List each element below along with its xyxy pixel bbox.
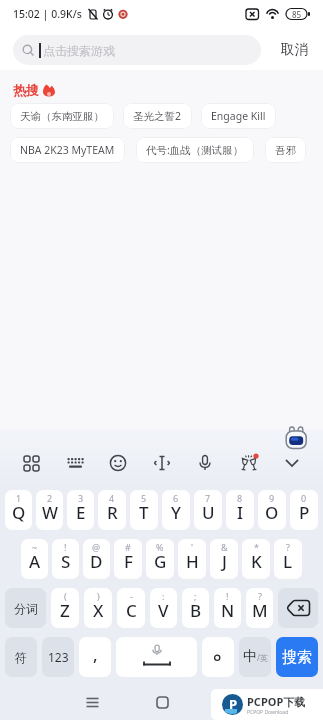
button[interactable]: 圣光之誓2 [123, 103, 192, 129]
button[interactable] [105, 450, 131, 476]
staticText: A [29, 550, 41, 573]
button[interactable] [202, 637, 234, 677]
staticText: O [265, 501, 279, 524]
button[interactable]: # [114, 539, 142, 579]
staticText: K [251, 550, 262, 573]
staticText: @ [92, 541, 101, 553]
staticText: 热搜 [13, 82, 39, 98]
button[interactable]: 代号:血战（测试服） [136, 137, 254, 163]
button[interactable]: 4 [98, 490, 126, 530]
button[interactable]: ! [214, 588, 241, 628]
button[interactable]: 0 [290, 490, 318, 530]
staticText: 点击搜索游戏 [43, 43, 115, 58]
button[interactable]: , [79, 637, 111, 677]
staticText: 6 [173, 492, 179, 504]
button[interactable] [18, 450, 44, 476]
button[interactable]: ? [246, 588, 273, 628]
button[interactable]: 中 [239, 637, 271, 677]
staticText: C [126, 599, 137, 622]
button[interactable]: 8 [226, 490, 254, 530]
staticText: 9 [269, 492, 275, 504]
button[interactable]: * [242, 539, 270, 579]
staticText: 3 [78, 492, 84, 504]
button[interactable] [192, 450, 218, 476]
staticText: J [222, 550, 227, 573]
button[interactable]: ~ [21, 539, 48, 579]
staticText: 天谕（东南亚服） [20, 110, 104, 123]
button[interactable]: 分词 [5, 588, 46, 628]
staticText: X [93, 599, 104, 622]
staticText: 代号:血战（测试服） [146, 143, 244, 157]
button[interactable]: ( [51, 588, 79, 628]
button[interactable] [80, 690, 104, 714]
button[interactable]: 吾邪 [265, 137, 306, 163]
staticText: 取消 [281, 41, 308, 58]
staticText: PCPOP Download [247, 709, 289, 716]
button[interactable] [279, 450, 305, 476]
button[interactable]: 取消 [261, 28, 323, 70]
button[interactable]: 7 [194, 490, 222, 530]
staticText: 2 [47, 492, 53, 504]
staticText: 吾邪 [275, 144, 296, 157]
button[interactable]: 123 [42, 637, 74, 677]
button[interactable]: ) [84, 588, 112, 628]
staticText: G [154, 550, 167, 573]
staticText: L [283, 550, 293, 573]
button[interactable] [149, 450, 175, 476]
button[interactable]: 1 [5, 490, 32, 530]
button[interactable]: 搜索 [276, 637, 318, 677]
button[interactable]: Engage Kill [201, 103, 276, 129]
button[interactable]: 2 [36, 490, 63, 530]
staticText: W [42, 501, 58, 524]
staticText: Z [60, 599, 70, 622]
staticText: PCPOP下载 [247, 694, 306, 709]
button[interactable] [62, 450, 88, 476]
staticText: 中 [243, 648, 257, 666]
staticText: # [125, 541, 131, 553]
staticText: 85 [292, 9, 302, 20]
staticText: - [130, 590, 133, 602]
button[interactable]: - [117, 588, 145, 628]
staticText: ? [286, 541, 290, 553]
button[interactable]: 5 [130, 490, 158, 530]
button[interactable]: 6 [162, 490, 190, 530]
staticText: 15:02 | 0.9K/s [13, 7, 82, 21]
button[interactable]: ? [274, 539, 302, 579]
staticText: 圣光之誓2 [133, 109, 182, 123]
staticText: Y [171, 501, 181, 524]
staticText: 8 [237, 492, 243, 504]
staticText: * [254, 541, 259, 553]
button[interactable]: @ [83, 539, 110, 579]
staticText: 分词 [14, 601, 38, 616]
staticText: 符 [15, 650, 27, 665]
button[interactable]: 9 [258, 490, 286, 530]
staticText: ; [194, 590, 197, 602]
staticText: 7 [205, 492, 211, 504]
button[interactable]: % [146, 539, 174, 579]
staticText: ( [64, 590, 67, 602]
staticText: D [90, 550, 103, 573]
staticText: V [158, 599, 169, 622]
staticText: M [252, 599, 268, 622]
staticText: U [202, 501, 215, 524]
button[interactable] [150, 690, 174, 714]
button[interactable]: 符 [5, 637, 37, 677]
button[interactable] [278, 588, 318, 628]
staticText: & [221, 541, 228, 553]
button[interactable]: 3 [67, 490, 94, 530]
staticText: P [229, 695, 238, 713]
button[interactable]: & [210, 539, 238, 579]
staticText: 0 [301, 492, 307, 504]
staticText: H [186, 550, 199, 573]
staticText: 123 [48, 649, 69, 665]
button[interactable] [116, 637, 197, 677]
button[interactable]: ' [178, 539, 206, 579]
button[interactable]: NBA 2K23 MyTEAM [10, 137, 125, 163]
staticText: S [61, 550, 71, 573]
button[interactable]: 天谕（东南亚服） [10, 103, 114, 129]
button[interactable]: ! [52, 539, 79, 579]
button[interactable]: : [150, 588, 177, 628]
button[interactable] [236, 450, 262, 476]
button[interactable]: ; [182, 588, 209, 628]
button[interactable]: 点击搜索游戏 [13, 35, 261, 65]
